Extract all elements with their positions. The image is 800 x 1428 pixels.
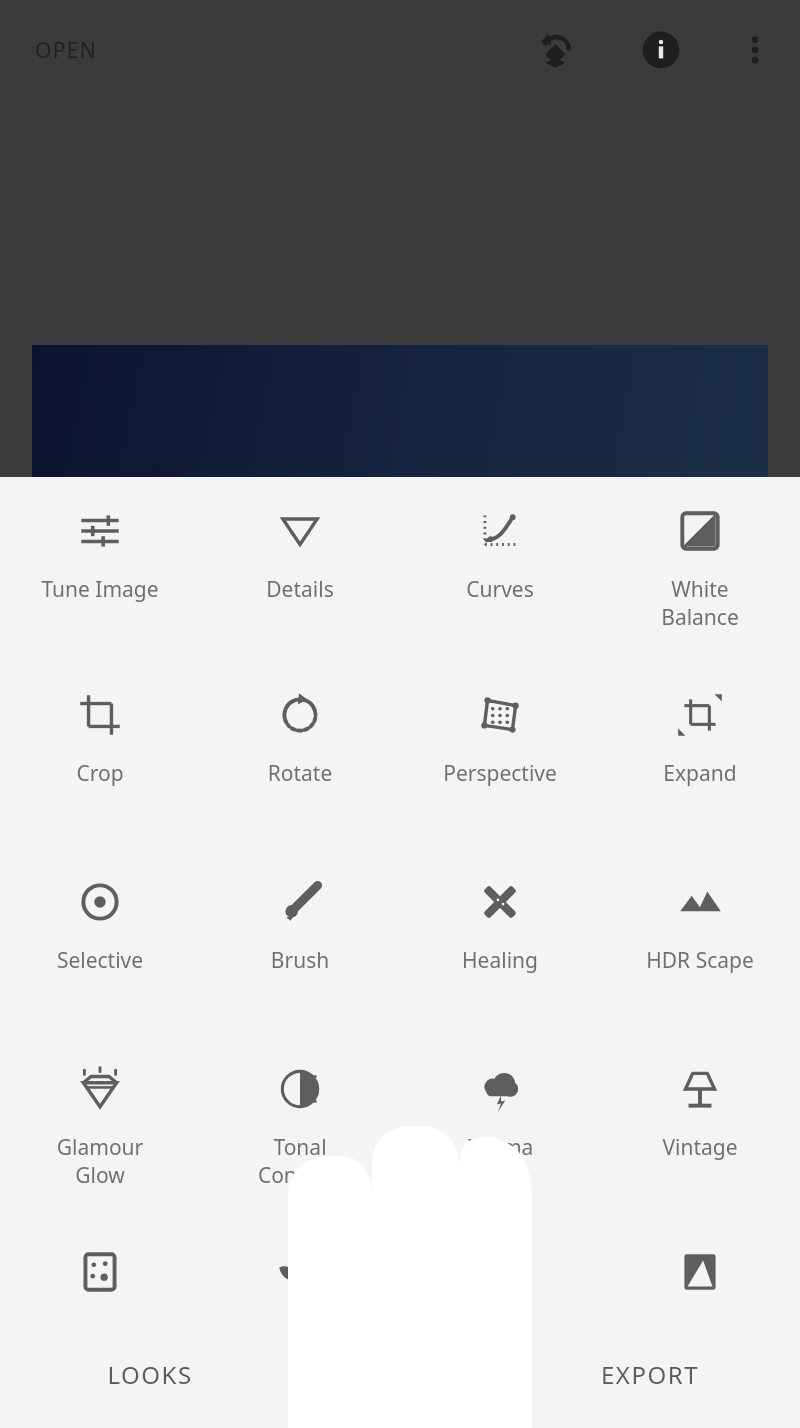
button[interactable]: Curves [400,477,600,667]
staticText: Vintage [600,1133,800,1162]
button[interactable]: Vintage [600,1041,800,1228]
button[interactable]: Revert [522,15,592,85]
staticText: Tonal Contrast [200,1133,400,1189]
staticText: Rotate [200,759,400,788]
button[interactable]: More options [724,19,786,81]
button[interactable]: Brush [200,854,400,1041]
staticText: HDR Scape [600,946,800,975]
staticText: Crop [0,759,200,788]
button[interactable]: Drama [400,1041,600,1228]
staticText: White Balance [600,575,800,631]
button[interactable]: Tune Image [0,477,200,667]
staticText: Curves [400,575,600,604]
button[interactable]: EXPORT [540,1330,760,1418]
staticText: Drama [400,1133,600,1162]
staticText: EXPORT [601,1358,699,1391]
button[interactable]: HDR Scape [600,854,800,1041]
button[interactable]: Filter [200,1228,400,1328]
button[interactable]: Expand [600,667,800,854]
button[interactable]: Details [200,477,400,667]
staticText: Glamour Glow [0,1133,200,1189]
staticText: Healing [400,946,600,975]
staticText: Selective [0,946,200,975]
button[interactable]: Healing [400,854,600,1041]
staticText: Perspective [400,759,600,788]
staticText: Expand [600,759,800,788]
button[interactable]: Crop [0,667,200,854]
button[interactable]: Filter [0,1228,200,1328]
button[interactable]: Rotate [200,667,400,854]
staticText: Tune Image [0,575,200,604]
button[interactable]: Filter [600,1228,800,1328]
button[interactable]: Tonal Contrast [200,1041,400,1228]
button[interactable]: Glamour Glow [0,1041,200,1228]
staticText: OPEN [35,36,97,65]
button[interactable]: Info [626,15,696,85]
button[interactable]: Perspective [400,667,600,854]
staticText: LOOKS [107,1358,193,1391]
button[interactable]: Selective [0,854,200,1041]
staticText: Details [200,575,400,604]
button[interactable]: LOOKS [50,1330,250,1418]
button[interactable]: White Balance [600,477,800,667]
staticText: Brush [200,946,400,975]
button[interactable]: Filter [400,1228,600,1328]
